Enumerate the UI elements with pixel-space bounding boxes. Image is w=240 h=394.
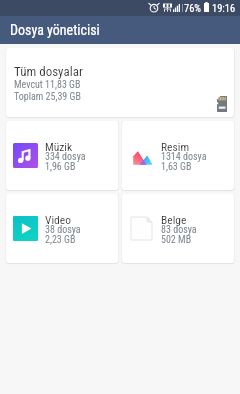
staticText: 1,96 GB <box>45 161 76 173</box>
staticText: 1314 dosya <box>161 151 207 163</box>
staticText: 502 MB <box>161 234 192 246</box>
staticText: Tüm dosyalar <box>14 64 83 79</box>
staticText: Müzik <box>45 140 73 153</box>
staticText: 334 dosya <box>45 151 86 163</box>
staticText: 19:16 <box>212 2 236 14</box>
button[interactable]: Resim <box>122 121 234 190</box>
button[interactable]: Müzik <box>6 121 118 190</box>
staticText: Toplam 25,39 GB <box>14 91 81 103</box>
other: SD card storage <box>217 96 227 112</box>
staticText: Video <box>45 213 71 226</box>
staticText: 1,63 GB <box>161 161 192 173</box>
staticText: 2,23 GB <box>45 234 76 246</box>
staticText: Resim <box>161 140 190 153</box>
button[interactable]: Tüm dosyalar <box>6 48 234 117</box>
staticText: 83 dosya <box>161 224 197 236</box>
staticText: 76% <box>184 2 202 14</box>
staticText: Mevcut 11,83 GB <box>14 79 81 91</box>
button[interactable]: Video <box>6 194 118 263</box>
button[interactable]: Belge <box>122 194 234 263</box>
staticText: 38 dosya <box>45 224 81 236</box>
staticText: Dosya yöneticisi <box>10 22 100 38</box>
staticText: Belge <box>161 213 187 226</box>
